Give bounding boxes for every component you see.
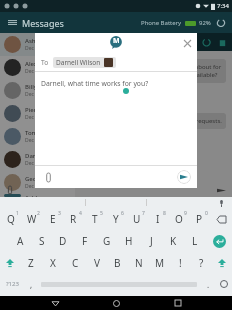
staticText: ,: [30, 279, 33, 290]
button[interactable]: R: [63, 208, 84, 230]
button[interactable]: Alex: [0, 56, 75, 79]
staticText: V: [94, 256, 100, 270]
button[interactable]: Ash: [0, 33, 75, 56]
staticText: E: [50, 212, 56, 226]
staticText: 92%: [199, 19, 211, 27]
button[interactable]: Emoji: [216, 274, 232, 294]
button[interactable]: ?123: [0, 274, 24, 294]
button[interactable]: Recent apps: [171, 296, 185, 310]
staticText: B: [114, 256, 121, 270]
button[interactable]: H: [118, 230, 140, 252]
button[interactable]: Ashley: [0, 194, 75, 197]
staticText: 0: [205, 210, 208, 217]
button[interactable]: S: [31, 230, 52, 252]
button[interactable]: Tom: [0, 125, 75, 148]
staticText: U: [133, 212, 141, 226]
staticText: G: [103, 234, 111, 248]
button[interactable]: [38, 274, 200, 294]
staticText: F: [82, 234, 88, 248]
staticText: Y: [113, 212, 119, 226]
button[interactable]: Refresh: [214, 16, 228, 30]
button[interactable]: D: [52, 230, 74, 252]
button[interactable]: I: [147, 208, 168, 230]
staticText: D: [59, 234, 67, 248]
button[interactable]: Y: [105, 208, 126, 230]
button[interactable]: X: [42, 252, 64, 274]
staticText: .: [207, 279, 210, 290]
button[interactable]: F: [74, 230, 96, 252]
button[interactable]: Geo: [0, 171, 75, 194]
button[interactable]: .: [200, 274, 216, 294]
button[interactable]: B: [107, 252, 128, 274]
button[interactable]: Compose message: [62, 162, 82, 182]
button[interactable]: Voice input: [216, 198, 226, 208]
staticText: 6: [121, 210, 124, 217]
staticText: Dec 23: [25, 91, 41, 98]
staticText: 9: [184, 210, 187, 217]
button[interactable]: O: [168, 208, 189, 230]
button[interactable]: U: [126, 208, 147, 230]
staticText: ...about for available?: [190, 63, 222, 79]
button[interactable]: N: [128, 252, 149, 274]
staticText: Dec 23: [25, 114, 41, 121]
staticText: ...requests.: [191, 117, 222, 125]
staticText: Ash: [25, 37, 36, 45]
staticText: R: [70, 212, 77, 226]
staticText: Pier: [25, 106, 37, 114]
button[interactable]: Close: [180, 36, 194, 50]
button[interactable]: J: [140, 230, 162, 252]
button[interactable]: Send: [177, 170, 191, 184]
button[interactable]: Dar: [0, 148, 75, 171]
button[interactable]: G: [96, 230, 118, 252]
button[interactable]: Z: [20, 252, 42, 274]
staticText: Alex: [25, 60, 38, 68]
staticText: Darnell, what time works for you?: [41, 79, 149, 88]
button[interactable]: Shift: [0, 252, 20, 274]
button[interactable]: Attach file: [41, 170, 55, 184]
button[interactable]: M: [149, 252, 170, 274]
staticText: Dec 23: [25, 45, 41, 52]
button[interactable]: V: [86, 252, 107, 274]
staticText: T: [92, 212, 98, 226]
button[interactable]: Shift: [212, 252, 232, 274]
button[interactable]: Backspace: [210, 208, 232, 230]
button[interactable]: ?: [191, 252, 212, 274]
button[interactable]: Back: [48, 296, 62, 310]
staticText: H: [125, 234, 133, 248]
button[interactable]: Open navigation menu: [6, 16, 19, 29]
staticText: Dec 23: [25, 68, 41, 75]
button[interactable]: Q: [0, 208, 21, 230]
staticText: Tom: [25, 129, 38, 137]
staticText: !: [179, 256, 182, 270]
staticText: ?123: [6, 280, 19, 288]
staticText: 7: [142, 210, 145, 217]
button[interactable]: Billy: [0, 79, 75, 102]
button[interactable]: K: [162, 230, 184, 252]
button[interactable]: !: [170, 252, 191, 274]
button[interactable]: L: [184, 230, 206, 252]
button[interactable]: Enter: [206, 230, 232, 252]
staticText: Dec 23: [25, 137, 41, 144]
staticText: 5: [100, 210, 103, 217]
button[interactable]: Pier: [0, 102, 75, 125]
button[interactable]: C: [64, 252, 86, 274]
button[interactable]: P: [189, 208, 210, 230]
button[interactable]: W: [21, 208, 42, 230]
staticText: W: [27, 212, 37, 226]
staticText: C: [72, 256, 79, 270]
staticText: K: [170, 234, 177, 248]
button[interactable]: Home: [109, 296, 123, 310]
staticText: 3: [58, 210, 61, 217]
staticText: N: [135, 256, 143, 270]
button[interactable]: A: [10, 230, 31, 252]
button[interactable]: Darnell, what time works for you?: [35, 72, 197, 165]
button[interactable]: To: [41, 53, 191, 71]
staticText: 2: [37, 210, 40, 217]
button[interactable]: E: [42, 208, 63, 230]
staticText: Billy: [25, 83, 37, 91]
staticText: P: [196, 212, 203, 226]
button[interactable]: ,: [24, 274, 38, 294]
button[interactable]: T: [84, 208, 105, 230]
staticText: J: [150, 234, 153, 248]
staticText: Ashley: [25, 194, 44, 197]
